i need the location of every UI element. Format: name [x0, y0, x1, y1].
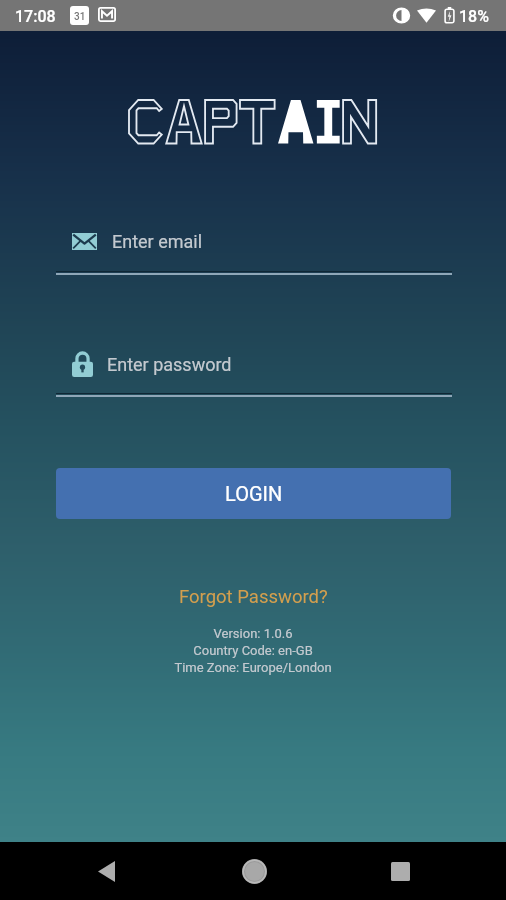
- staticText: Enter password: [107, 354, 232, 375]
- staticText: 18%: [459, 7, 489, 26]
- button[interactable]: Home: [230, 847, 278, 895]
- button[interactable]: Forgot Password?: [173, 584, 334, 610]
- staticText: 31: [74, 11, 86, 23]
- staticText: Version: 1.0.6 Country Code: en-GB Time …: [0, 626, 506, 675]
- staticText: LOGIN: [225, 482, 283, 505]
- button[interactable]: Recent apps: [376, 847, 424, 895]
- button[interactable]: LOGIN: [56, 468, 451, 519]
- button[interactable]: Back: [82, 847, 130, 895]
- staticText: Enter email: [112, 231, 203, 252]
- staticText: Forgot Password?: [179, 586, 328, 608]
- staticText: 17:08: [15, 7, 56, 26]
